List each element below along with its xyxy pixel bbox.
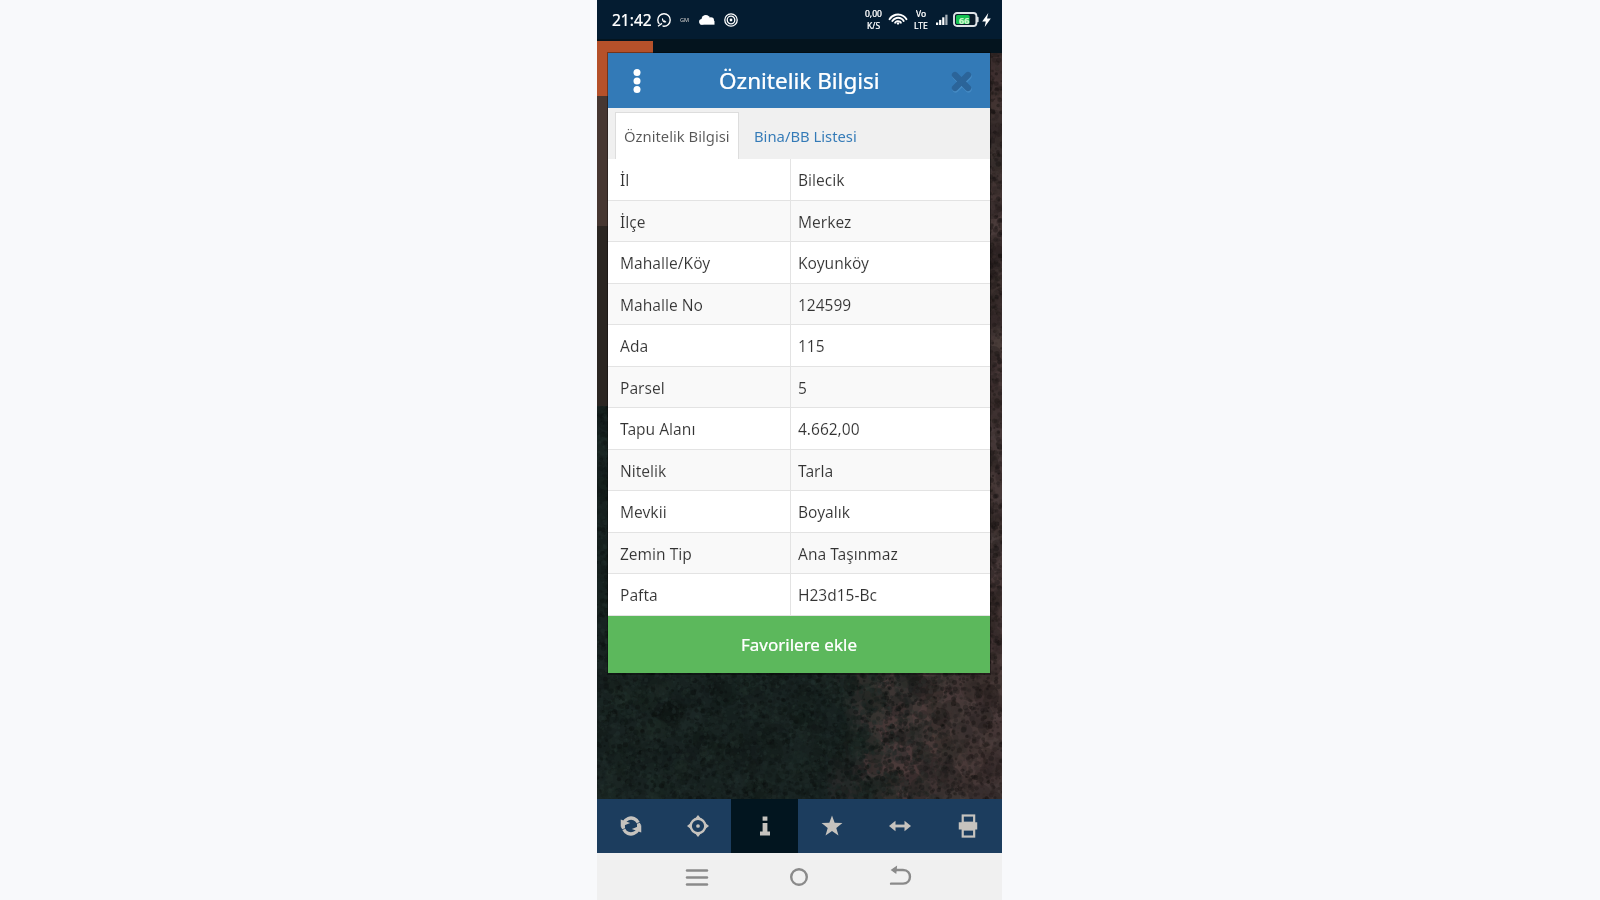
staticText: Mahalle/Köy [620, 252, 711, 273]
staticText: Vo [916, 8, 927, 20]
staticText: 5 [798, 377, 807, 398]
staticText: Mahalle No [620, 294, 703, 315]
button[interactable]: Tapu Alanı [608, 408, 990, 449]
staticText: 4.662,00 [798, 418, 860, 439]
staticText: Ada [620, 335, 649, 356]
button[interactable]: Menu [625, 59, 649, 103]
staticText: Mevkii [620, 501, 667, 522]
staticText: 115 [798, 335, 825, 356]
staticText: Boyalık [798, 501, 851, 522]
button[interactable]: Ada [608, 325, 990, 366]
button[interactable]: Mevkii [608, 491, 990, 532]
button[interactable]: Info [731, 799, 798, 853]
staticText: İlçe [620, 211, 646, 232]
button[interactable]: Back [870, 853, 930, 900]
button[interactable]: Home [769, 853, 829, 900]
staticText: 124599 [798, 294, 852, 315]
staticText: Öznitelik Bilgisi [624, 126, 730, 146]
staticText: K/S [867, 20, 881, 32]
staticText: GM [680, 16, 689, 23]
button[interactable]: Favorites [798, 799, 866, 853]
staticText: Zemin Tip [620, 543, 692, 564]
button[interactable]: Pafta [608, 574, 990, 615]
button[interactable]: Bina/BB Listesi [739, 112, 872, 159]
button[interactable]: Nitelik [608, 450, 990, 490]
button[interactable]: Refresh [597, 799, 664, 853]
button[interactable]: Recents [667, 853, 727, 900]
button[interactable]: Close [944, 64, 978, 98]
button[interactable]: Öznitelik Bilgisi [616, 113, 738, 159]
staticText: Tapu Alanı [620, 418, 696, 439]
button[interactable]: İlçe [608, 201, 990, 241]
staticText: Pafta [620, 584, 658, 605]
staticText: Ana Taşınmaz [798, 543, 898, 564]
button[interactable]: Mahalle No [608, 284, 990, 324]
staticText: LTE [914, 20, 928, 32]
staticText: Bina/BB Listesi [754, 126, 857, 146]
button[interactable]: Zemin Tip [608, 533, 990, 573]
staticText: Parsel [620, 377, 665, 398]
staticText: Nitelik [620, 460, 667, 481]
staticText: 0,00 [865, 8, 882, 20]
button[interactable]: İl [608, 159, 990, 200]
button[interactable]: Print [934, 799, 1002, 853]
staticText: 21:42 [612, 9, 652, 30]
staticText: Tarla [798, 460, 834, 481]
button[interactable]: Favorilere ekle [608, 616, 990, 673]
staticText: 66 [959, 14, 970, 26]
staticText: H23d15-Bc [798, 584, 877, 605]
staticText: Öznitelik Bilgisi [719, 65, 880, 96]
staticText: Merkez [798, 211, 852, 232]
button[interactable]: Measure [866, 799, 934, 853]
staticText: Bilecik [798, 169, 845, 190]
staticText: İl [620, 169, 630, 190]
staticText: Koyunköy [798, 252, 869, 273]
staticText: Favorilere ekle [741, 633, 857, 656]
button[interactable]: Mahalle/Köy [608, 242, 990, 283]
button[interactable]: Locate [664, 799, 731, 853]
button[interactable]: Parsel [608, 367, 990, 407]
